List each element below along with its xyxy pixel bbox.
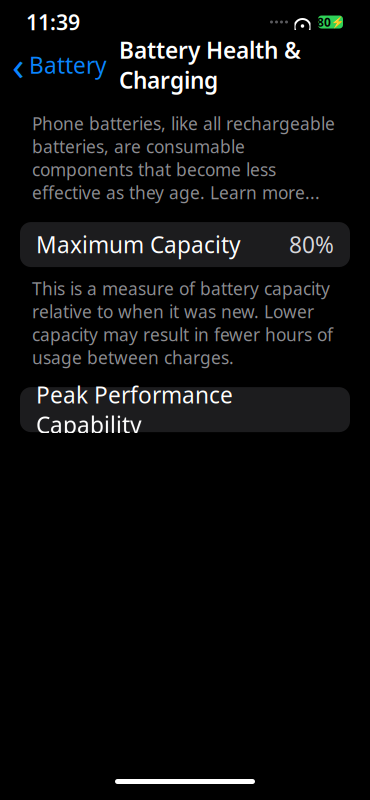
staticText: Battery Health & Charging [119, 35, 301, 95]
button[interactable]: Maximum Capacity [0, 222, 370, 267]
staticText: Phone batteries, like all rechargeable b… [32, 112, 335, 204]
staticText: ⚡ [331, 16, 344, 28]
staticText: Battery [29, 50, 107, 80]
button[interactable]: ‹ [0, 32, 107, 97]
button[interactable]: Peak Performance Capability [0, 387, 370, 432]
staticText: Maximum Capacity [36, 229, 241, 260]
staticText: ‹ [12, 38, 24, 91]
staticText: This is a measure of battery capacity re… [32, 277, 333, 369]
staticText: 11:39 [26, 8, 80, 36]
staticText: 80% [289, 229, 334, 260]
staticText: 80 [317, 14, 331, 30]
staticText: Peak Performance Capability [36, 379, 233, 440]
